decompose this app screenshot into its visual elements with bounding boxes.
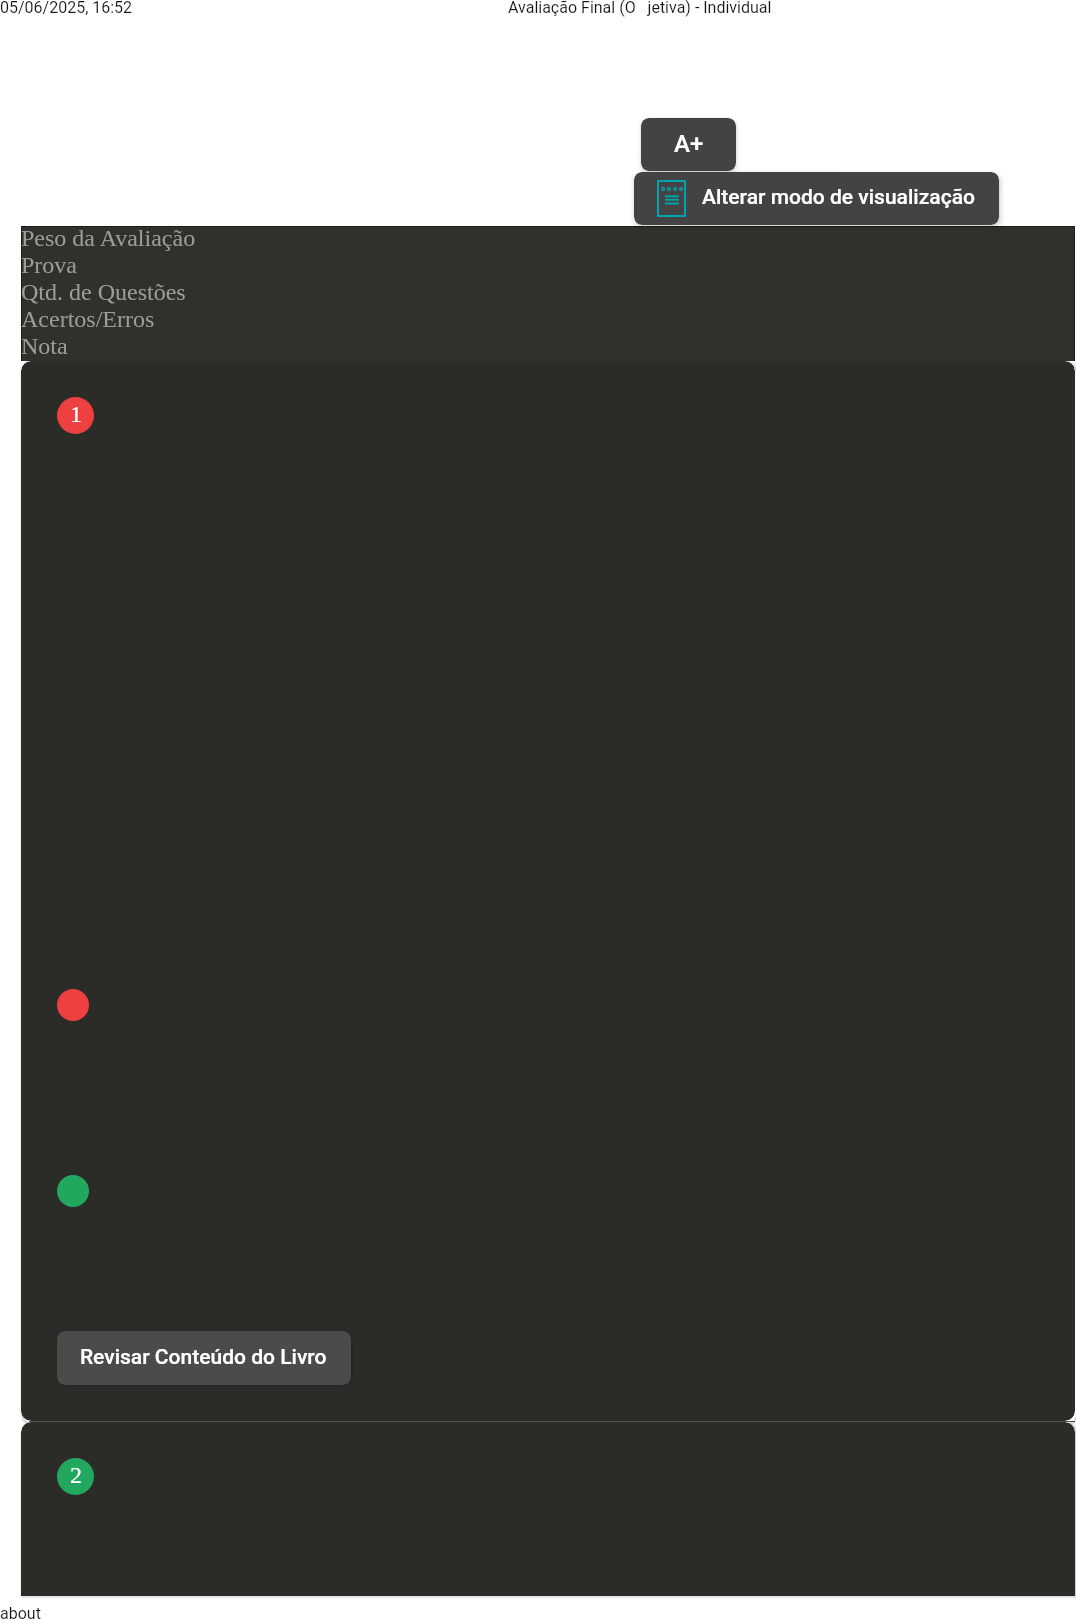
button[interactable]: Aumentar tamanho da fonte	[641, 118, 736, 171]
button[interactable]: Revisar Conteúdo do Livro	[57, 1331, 351, 1385]
button[interactable]: 2	[57, 1458, 94, 1495]
staticText: Nota	[21, 333, 68, 359]
staticText: Revisar Conteúdo do Livro	[80, 1345, 327, 1370]
other: Resposta incorreta	[57, 989, 89, 1021]
button[interactable]: 1	[57, 397, 94, 434]
staticText: 2	[70, 1462, 82, 1489]
other: Resposta correta	[57, 1175, 89, 1207]
staticText: Avaliação Final (O jetiva) - Individual	[508, 0, 772, 17]
staticText: about	[0, 1604, 41, 1620]
staticText: Peso da Avaliação	[21, 225, 196, 252]
button[interactable]: 1	[21, 361, 1075, 1421]
staticText: Qtd. de Questões	[21, 279, 186, 306]
button[interactable]: 2	[21, 1422, 1075, 1596]
staticText: 1	[70, 401, 82, 428]
staticText: Acertos/Erros	[21, 306, 155, 333]
staticText: 05/06/2025, 16:52	[0, 0, 133, 17]
staticText: A+	[674, 130, 704, 158]
button[interactable]: Alterar modo de visualização	[634, 172, 999, 225]
staticText: Alterar modo de visualização	[702, 185, 975, 210]
staticText: Prova	[21, 252, 77, 279]
